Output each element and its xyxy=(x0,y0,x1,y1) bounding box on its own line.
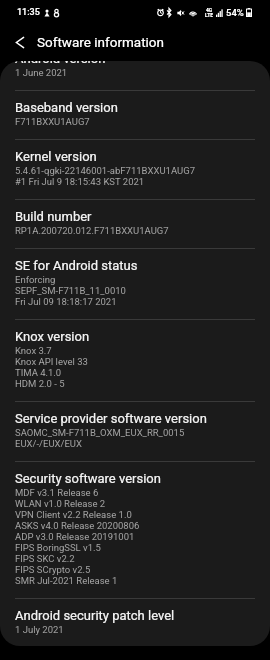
staticText: SAOMC_SM-F711B_OXM_EUX_RR_0015 EUX/-/EUX… xyxy=(15,427,185,449)
button[interactable]: Navigate up xyxy=(0,25,33,59)
staticText: SE for Android status xyxy=(15,258,138,273)
staticText: Software information xyxy=(37,34,165,50)
staticText: 4G xyxy=(206,7,213,13)
staticText: Build number xyxy=(15,209,92,224)
button[interactable]: Android security patch level xyxy=(0,599,270,646)
staticText: 54% xyxy=(226,7,244,18)
staticText: Service provider software version xyxy=(15,411,207,426)
staticText: Android version xyxy=(15,61,106,66)
staticText: MDF v3.1 Release 6 WLAN v1.0 Release 2 V… xyxy=(15,487,140,586)
staticText: Security software version xyxy=(15,471,161,486)
staticText: Android security patch level xyxy=(15,608,175,623)
button[interactable]: SE for Android status xyxy=(0,249,270,320)
staticText: LTE xyxy=(205,12,214,18)
button[interactable]: Build number xyxy=(0,200,270,249)
button[interactable]: Service provider software version xyxy=(0,402,270,462)
button[interactable]: Knox version xyxy=(0,320,270,402)
staticText: Enforcing SEPF_SM-F711B_11_0010 Fri Jul … xyxy=(15,274,126,307)
staticText: Kernel version xyxy=(15,149,97,164)
button[interactable]: Android version xyxy=(0,61,270,91)
staticText: 1 July 2021 xyxy=(15,624,64,635)
staticText: 11:35 xyxy=(17,7,40,18)
button[interactable]: Kernel version xyxy=(0,140,270,200)
staticText: F711BXXU1AUG7 xyxy=(15,116,90,127)
staticText: 1 June 2021 xyxy=(15,67,68,78)
staticText: 5.4.61-qgki-22146001-abF711BXXU1AUG7 #1 … xyxy=(15,165,196,187)
staticText: RP1A.200720.012.F711BXXU1AUG7 xyxy=(15,225,169,236)
staticText: Knox 3.7 Knox API level 33 TIMA 4.1.0 HD… xyxy=(15,345,88,389)
staticText: Baseband version xyxy=(15,100,118,115)
button[interactable]: Baseband version xyxy=(0,91,270,140)
staticText: Knox version xyxy=(15,329,90,344)
button[interactable]: Security software version xyxy=(0,462,270,599)
